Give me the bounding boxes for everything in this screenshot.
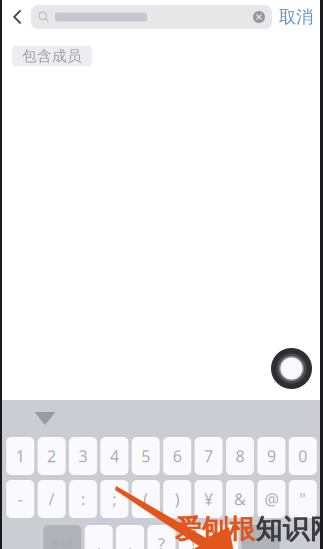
button[interactable]: 4	[100, 437, 128, 475]
staticText: 5	[141, 445, 150, 467]
button[interactable]: @	[257, 480, 285, 518]
staticText: ¥	[204, 488, 213, 510]
button[interactable]: ,	[116, 525, 144, 549]
button[interactable]: 9	[257, 437, 285, 475]
staticText: 取消	[279, 6, 313, 28]
staticText: 9	[267, 445, 276, 467]
button[interactable]: 2	[38, 437, 66, 475]
staticText: &	[234, 488, 246, 510]
staticText: 爱刨根	[174, 513, 255, 546]
button[interactable]: /	[38, 480, 66, 518]
button[interactable]: ;	[100, 480, 128, 518]
staticText: 6	[173, 445, 182, 467]
button[interactable]: 0	[289, 437, 317, 475]
staticText: ;	[112, 488, 116, 510]
staticText: ?	[158, 533, 165, 549]
button[interactable]	[242, 525, 280, 549]
button[interactable]: AssistiveTouch	[271, 348, 312, 389]
button[interactable]: &	[226, 480, 254, 518]
staticText: 1	[16, 445, 25, 467]
staticText: @	[264, 488, 278, 510]
button[interactable]: 6	[163, 437, 191, 475]
staticText: )	[175, 488, 180, 510]
button[interactable]: 8	[226, 437, 254, 475]
staticText: .	[97, 533, 101, 549]
button[interactable]: Back	[4, 0, 31, 34]
staticText: 7	[204, 445, 213, 467]
staticText: :	[81, 488, 85, 510]
button[interactable]: 5	[132, 437, 160, 475]
button[interactable]: 7	[195, 437, 223, 475]
button[interactable]: :	[69, 480, 97, 518]
staticText: 3	[78, 445, 87, 467]
button[interactable]: .	[85, 525, 113, 549]
button[interactable]: )	[163, 480, 191, 518]
button[interactable]: ?	[147, 525, 175, 549]
button[interactable]: 3	[69, 437, 97, 475]
button[interactable]	[31, 0, 272, 34]
button[interactable]: Hide keyboard	[23, 401, 67, 435]
staticText: !	[191, 533, 195, 549]
staticText: 2	[47, 445, 56, 467]
staticText: 0	[298, 445, 307, 467]
staticText: (	[143, 488, 148, 510]
staticText: "	[299, 488, 306, 510]
button[interactable]: 1	[6, 437, 34, 475]
button[interactable]: ¥	[195, 480, 223, 518]
staticText: 知识网	[255, 513, 323, 546]
staticText: 4	[110, 445, 119, 467]
staticText: 8	[235, 445, 244, 467]
button[interactable]: #+=	[43, 525, 81, 549]
button[interactable]: -	[6, 480, 34, 518]
button[interactable]: "	[289, 480, 317, 518]
button[interactable]: !	[179, 525, 207, 549]
staticText: /	[49, 488, 55, 510]
button[interactable]: '	[210, 525, 238, 549]
button[interactable]: 取消	[276, 0, 316, 34]
button[interactable]: 包含成员	[12, 46, 92, 66]
button[interactable]: (	[132, 480, 160, 518]
staticText: 包含成员	[22, 47, 82, 65]
staticText: ,	[128, 533, 132, 549]
staticText: -	[18, 488, 23, 510]
